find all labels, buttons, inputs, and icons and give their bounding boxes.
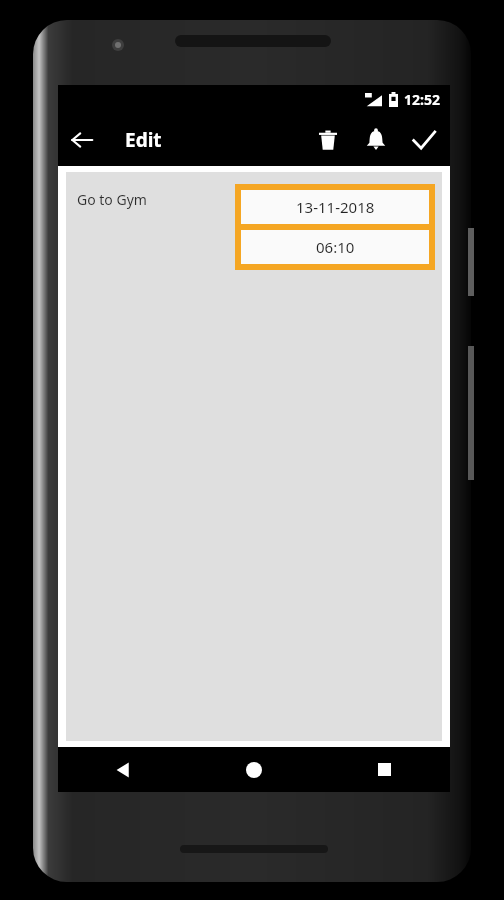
staticText: Go to Gym [77, 190, 147, 209]
button[interactable]: Save [400, 116, 448, 164]
button[interactable]: Go to Gym [66, 172, 442, 270]
button[interactable]: Notification [352, 116, 400, 164]
button[interactable]: Home [188, 747, 319, 792]
staticText: 13-11-2018 [296, 197, 375, 217]
button[interactable]: 06:10 [241, 230, 429, 264]
staticText: Edit [125, 127, 162, 153]
button[interactable]: 13-11-2018 [241, 190, 429, 224]
button[interactable]: Recent apps [319, 747, 450, 792]
button[interactable]: Navigate up [58, 116, 106, 164]
staticText: 12:52 [404, 90, 440, 109]
button[interactable]: Back [58, 747, 188, 792]
button[interactable]: Delete [304, 116, 352, 164]
staticText: 06:10 [316, 237, 355, 257]
